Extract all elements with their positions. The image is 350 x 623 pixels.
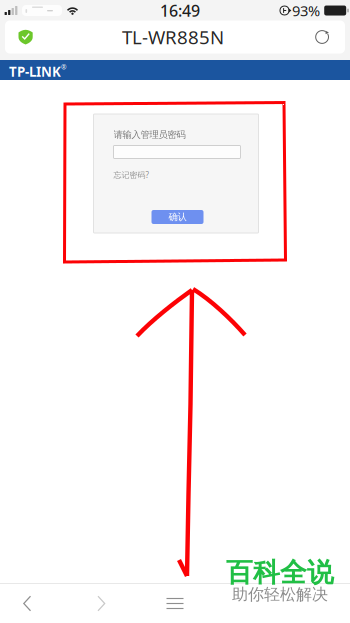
staticText: 百科全说 xyxy=(226,556,334,589)
staticText: 忘记密码? xyxy=(113,169,148,180)
staticText: 93% xyxy=(292,1,320,20)
button[interactable]: Reload page xyxy=(303,21,341,53)
button[interactable]: Privacy report xyxy=(9,21,43,53)
staticText: 16:49 xyxy=(160,0,200,21)
staticText: TL-WR885N xyxy=(122,25,224,49)
staticText: 请输入管理员密码 xyxy=(113,129,185,140)
staticText: 助你轻松解决 xyxy=(232,585,328,604)
staticText: TP-LINK xyxy=(9,63,61,80)
staticText: 确认 xyxy=(168,211,186,223)
staticText: ® xyxy=(61,63,67,71)
button[interactable]: 确认 xyxy=(151,210,203,224)
button[interactable]: Menu xyxy=(147,584,203,623)
button[interactable]: Back xyxy=(0,584,55,623)
button[interactable]: Forward xyxy=(55,584,147,623)
button[interactable]: 忘记密码? xyxy=(93,158,148,180)
